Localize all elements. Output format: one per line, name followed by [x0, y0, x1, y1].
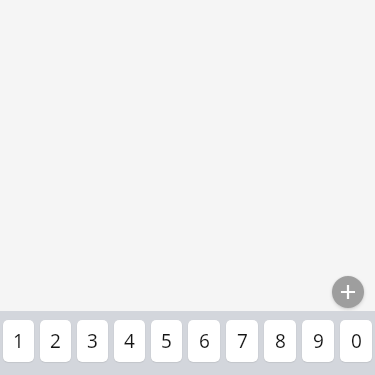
button[interactable]: 1	[3, 320, 34, 362]
staticText: 0	[351, 328, 362, 354]
button[interactable]: 5	[151, 320, 182, 362]
button[interactable]: 6	[188, 320, 220, 362]
button[interactable]: 7	[226, 320, 258, 362]
button[interactable]: 9	[302, 320, 334, 362]
button[interactable]: 0	[340, 320, 372, 362]
staticText: 2	[50, 328, 61, 354]
staticText: 4	[124, 328, 135, 354]
staticText: 7	[237, 328, 248, 354]
staticText: 3	[87, 328, 98, 354]
staticText: 9	[313, 328, 324, 354]
staticText: 6	[199, 328, 210, 354]
button[interactable]: 2	[40, 320, 71, 362]
button[interactable]: 4	[114, 320, 145, 362]
button[interactable]: 8	[264, 320, 296, 362]
staticText: 5	[161, 328, 172, 354]
staticText: 1	[13, 328, 24, 354]
button[interactable]: 3	[77, 320, 108, 362]
staticText: 8	[275, 328, 286, 354]
button[interactable]: Add	[332, 276, 364, 308]
